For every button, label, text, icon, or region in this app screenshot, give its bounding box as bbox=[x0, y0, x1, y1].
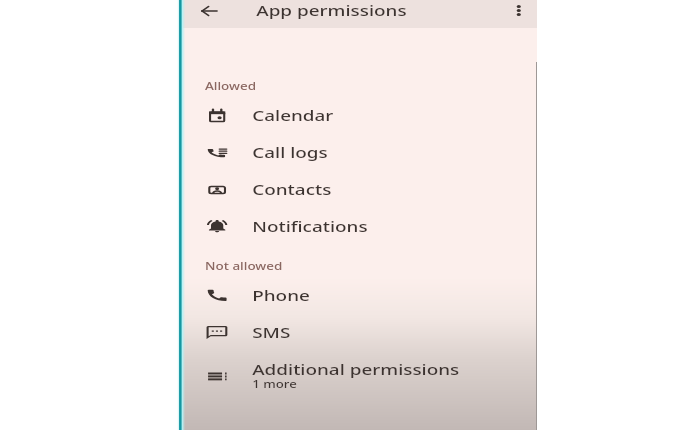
button[interactable]: Notifications bbox=[178, 208, 537, 245]
staticText: Not allowed bbox=[205, 259, 283, 273]
button[interactable]: Back bbox=[195, 0, 222, 21]
staticText: 1 more bbox=[252, 378, 297, 391]
staticText: SMS bbox=[252, 323, 291, 342]
staticText: Call logs bbox=[252, 143, 328, 162]
staticText: Contacts bbox=[252, 180, 332, 199]
button[interactable]: Call logs bbox=[178, 134, 537, 171]
staticText: Additional permissions bbox=[252, 360, 460, 379]
button[interactable]: Contacts bbox=[178, 171, 537, 208]
staticText: Notifications bbox=[252, 217, 368, 236]
staticText: App permissions bbox=[256, 1, 407, 20]
button[interactable]: SMS bbox=[178, 314, 537, 351]
staticText: Calendar bbox=[252, 106, 334, 125]
button[interactable]: Phone bbox=[178, 277, 537, 314]
staticText: Phone bbox=[252, 286, 310, 305]
staticText: Allowed bbox=[205, 79, 256, 93]
button[interactable]: Additional permissions bbox=[178, 357, 537, 394]
button[interactable]: More options bbox=[506, 0, 532, 21]
button[interactable]: Calendar bbox=[178, 97, 537, 134]
